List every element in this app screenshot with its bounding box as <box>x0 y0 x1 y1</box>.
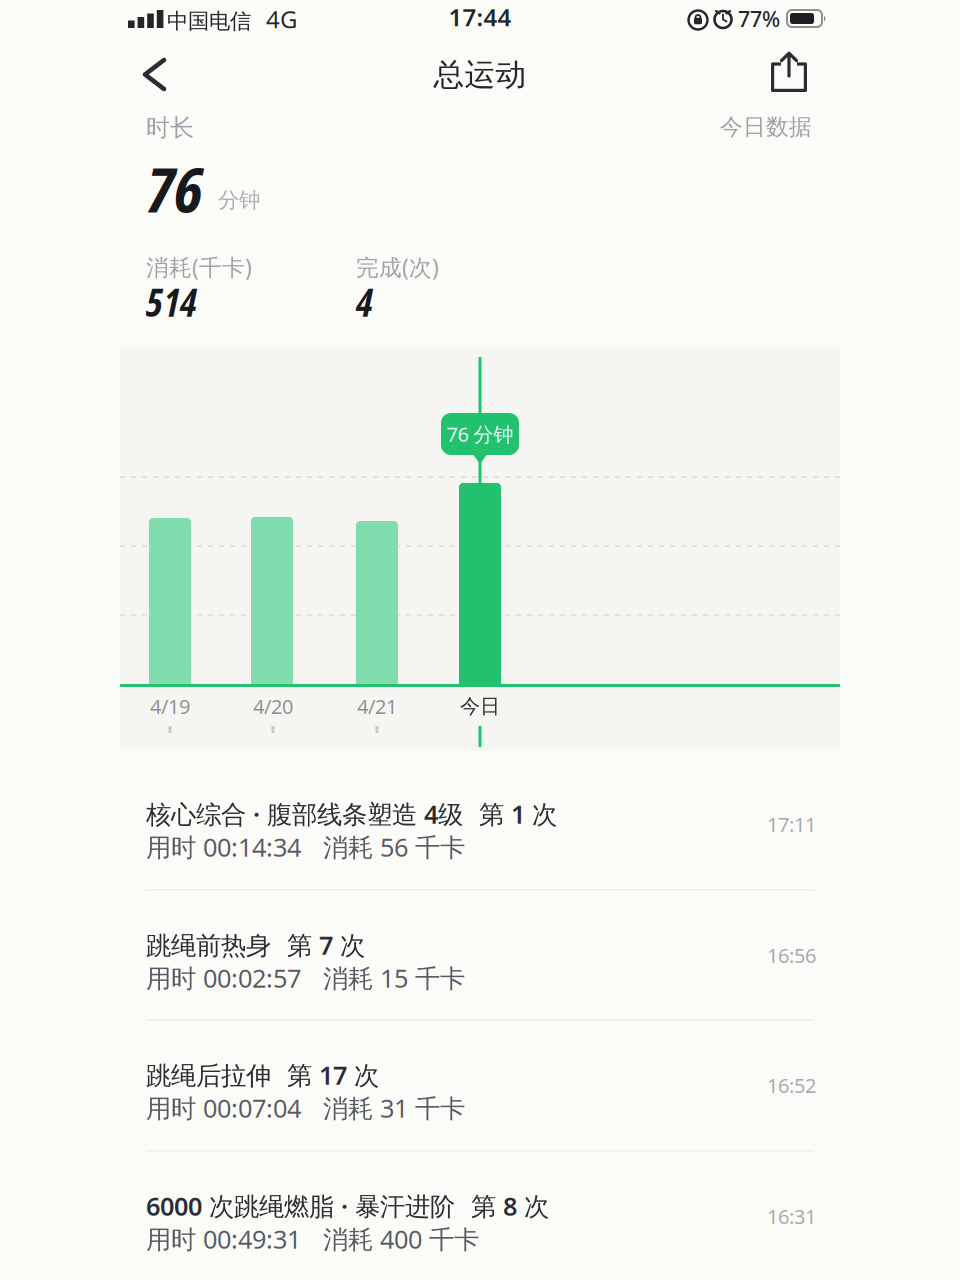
staticText: 16:31 <box>767 1203 816 1230</box>
staticText: 4G <box>266 3 297 35</box>
staticText: 用时 00:07:04 <box>146 1091 301 1125</box>
button[interactable]: 跳绳前热身 第 7 次 <box>0 889 960 1020</box>
staticText: 今日 <box>460 694 500 719</box>
staticText: 总运动 <box>433 56 526 94</box>
button[interactable] <box>771 52 807 92</box>
staticText: 17:11 <box>767 811 816 838</box>
staticText: 用时 00:14:34 <box>146 830 301 864</box>
staticText: 4/19 <box>150 693 190 720</box>
staticText: 跳绳后拉伸 第 17 次 <box>146 1058 379 1092</box>
staticText: 时长 <box>146 113 194 142</box>
staticText: 今日数据 <box>720 113 812 141</box>
staticText: 76 分钟 <box>446 421 513 447</box>
button[interactable]: 跳绳后拉伸 第 17 次 <box>0 1019 960 1150</box>
staticText: 消耗 400 千卡 <box>323 1222 479 1256</box>
staticText: 消耗 31 千卡 <box>323 1091 465 1125</box>
staticText: 4/20 <box>253 693 293 720</box>
button[interactable] <box>140 48 180 100</box>
staticText: 16:56 <box>767 942 816 969</box>
staticText: 4/21 <box>357 693 397 720</box>
staticText: 消耗(千卡) <box>146 252 252 282</box>
staticText: 分钟 <box>218 187 260 213</box>
staticText: 消耗 15 千卡 <box>323 961 465 995</box>
staticText: 用时 00:02:57 <box>146 961 301 995</box>
staticText: 77% <box>738 4 780 33</box>
staticText: 6000 次跳绳燃脂 · 暴汗进阶 第 8 次 <box>146 1189 549 1223</box>
staticText: 跳绳前热身 第 7 次 <box>146 928 365 962</box>
staticText: 4 <box>356 276 373 327</box>
staticText: 514 <box>146 276 197 327</box>
staticText: 中国电信 <box>167 8 251 34</box>
staticText: 16:52 <box>767 1072 816 1099</box>
staticText: 76 <box>146 148 202 229</box>
staticText: 核心综合 · 腹部线条塑造 4级 第 1 次 <box>146 797 557 831</box>
button[interactable]: 核心综合 · 腹部线条塑造 4级 第 1 次 <box>0 758 960 889</box>
staticText: 消耗 56 千卡 <box>323 830 465 864</box>
staticText: 用时 00:49:31 <box>146 1222 301 1256</box>
staticText: 17:44 <box>448 1 511 33</box>
staticText: 完成(次) <box>356 252 439 282</box>
button[interactable]: 6000 次跳绳燃脂 · 暴汗进阶 第 8 次 <box>0 1150 960 1280</box>
